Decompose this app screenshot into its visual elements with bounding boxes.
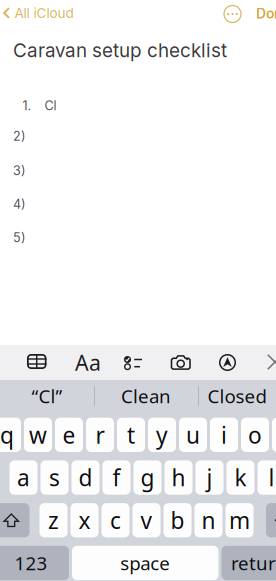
staticText: h [171, 462, 185, 493]
staticText: u [186, 420, 200, 450]
button[interactable]: All iCloud [0, 2, 81, 24]
staticText: space [120, 551, 170, 575]
staticText: e [62, 420, 75, 450]
button[interactable]: p [272, 418, 276, 452]
button[interactable]: o [241, 418, 269, 452]
staticText: Aa [75, 348, 101, 377]
staticText: 3) [13, 163, 26, 178]
button[interactable]: c [101, 503, 129, 537]
button[interactable]: d [71, 460, 99, 495]
staticText: m [229, 505, 250, 535]
button[interactable]: e [55, 418, 83, 452]
staticText: f [112, 462, 120, 493]
button[interactable]: Hide keyboard [267, 354, 276, 370]
staticText: Closed [207, 384, 266, 408]
button[interactable]: b [163, 503, 191, 537]
button[interactable]: Done [256, 4, 276, 23]
staticText: k [234, 462, 246, 493]
button[interactable]: y [148, 418, 176, 452]
button[interactable]: 123 [0, 546, 69, 580]
button[interactable]: h [164, 460, 192, 495]
button[interactable]: k [226, 460, 254, 495]
staticText: 1. [22, 98, 31, 113]
button[interactable]: Camera [171, 355, 190, 370]
button[interactable]: Table [27, 354, 46, 369]
button[interactable]: Markup [219, 354, 236, 371]
staticText: return [231, 551, 276, 575]
staticText: w [29, 420, 47, 450]
button[interactable]: i [210, 418, 238, 452]
button[interactable]: s [40, 460, 68, 495]
staticText: b [170, 505, 184, 535]
staticText: a [17, 462, 30, 493]
staticText: o [248, 420, 262, 450]
button[interactable]: t [117, 418, 145, 452]
staticText: Caravan setup checklist [13, 39, 227, 62]
staticText: q [0, 420, 14, 450]
staticText: v [140, 505, 152, 535]
button[interactable]: w [24, 418, 52, 452]
staticText: Cl [44, 98, 56, 113]
staticText: 123 [14, 551, 47, 575]
button[interactable]: More [224, 5, 241, 22]
staticText: t [127, 420, 135, 450]
button[interactable]: f [102, 460, 130, 495]
staticText: r [95, 420, 104, 450]
staticText: 2) [13, 128, 26, 144]
staticText: Done [256, 5, 276, 22]
button[interactable]: Clean [94, 380, 198, 412]
button[interactable]: Shift [0, 503, 29, 537]
staticText: “Cl” [31, 384, 62, 408]
staticText: s [49, 462, 60, 493]
staticText: c [110, 505, 121, 535]
button[interactable]: Checklist [124, 355, 142, 370]
button[interactable]: q [0, 418, 21, 452]
staticText: Clean [121, 384, 171, 408]
staticText: y [156, 420, 168, 450]
button[interactable]: m [225, 503, 253, 537]
button[interactable]: Delete [266, 503, 276, 537]
staticText: x [78, 505, 90, 535]
staticText: g [140, 462, 154, 493]
button[interactable]: r [86, 418, 114, 452]
staticText: i [221, 420, 227, 450]
button[interactable]: return [221, 546, 276, 580]
button[interactable]: v [132, 503, 160, 537]
button[interactable]: u [179, 418, 207, 452]
staticText: 4) [13, 196, 26, 212]
button[interactable]: n [194, 503, 222, 537]
staticText: 5) [13, 230, 26, 245]
staticText: z [48, 505, 59, 535]
button[interactable]: g [133, 460, 161, 495]
button[interactable]: Closed [198, 380, 276, 412]
button[interactable]: j [195, 460, 223, 495]
staticText: n [201, 505, 215, 535]
staticText: d [78, 462, 92, 493]
button[interactable]: “Cl” [0, 380, 94, 412]
button[interactable]: a [9, 460, 37, 495]
staticText: j [206, 462, 212, 493]
button[interactable]: l [257, 460, 276, 495]
staticText: l [268, 462, 274, 493]
button[interactable]: Text format [75, 353, 101, 372]
button[interactable]: space [72, 546, 218, 580]
button[interactable]: z [39, 503, 67, 537]
staticText: All iCloud [14, 5, 73, 21]
button[interactable]: x [70, 503, 98, 537]
